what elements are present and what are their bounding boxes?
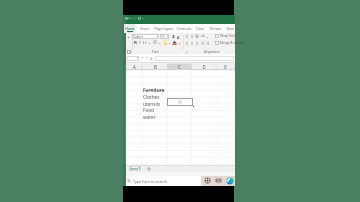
staticText: Type here to search	[133, 179, 167, 184]
button[interactable]: B	[150, 64, 160, 70]
staticText: Food	[143, 107, 154, 113]
button[interactable]: Clothes	[143, 93, 160, 100]
button[interactable]: Cortana	[204, 177, 211, 184]
button[interactable]: Orientation	[201, 34, 205, 38]
button[interactable]: Align	[190, 41, 194, 45]
staticText: Wrap Text	[220, 34, 235, 38]
button[interactable]: Cancel	[141, 56, 144, 59]
button[interactable]: Italic	[138, 40, 142, 44]
button[interactable]: Calibri	[132, 34, 159, 39]
button[interactable]: Task View	[215, 177, 222, 184]
staticText: C	[178, 64, 181, 70]
button[interactable]: Align	[195, 34, 199, 38]
button[interactable]: Formulas	[175, 24, 193, 33]
staticText: I	[139, 40, 141, 44]
button[interactable]: Insert	[137, 24, 152, 33]
button[interactable]: Increase font size	[171, 34, 175, 38]
staticText: A	[172, 34, 175, 38]
button[interactable]: Decrease indent	[201, 41, 205, 45]
button[interactable]: View	[224, 24, 235, 33]
button[interactable]: Merge & Center	[215, 41, 244, 45]
button[interactable]: Furniture	[143, 86, 165, 93]
button[interactable]: Align	[185, 41, 189, 45]
button[interactable]: water	[143, 113, 156, 120]
button[interactable]: E	[220, 64, 230, 70]
button[interactable]: Bold	[133, 40, 137, 44]
staticText: Formulas	[177, 26, 192, 30]
button[interactable]: Borders	[153, 40, 157, 44]
staticText: Home	[125, 26, 135, 30]
staticText: Merge & Center	[220, 41, 244, 45]
staticText: Font	[152, 50, 159, 54]
staticText: B	[154, 64, 157, 70]
staticText: U	[143, 40, 147, 44]
staticText: Review	[210, 26, 221, 30]
staticText: water	[143, 114, 156, 120]
button[interactable]: Align	[195, 41, 199, 45]
staticText: Clothes	[143, 94, 160, 100]
button[interactable]: Selected cell	[167, 98, 193, 106]
button[interactable]: Type here to search	[126, 176, 201, 186]
button[interactable]: 11	[160, 34, 169, 39]
staticText: Insert	[140, 26, 150, 30]
button[interactable]: Customize Quick Access Toolbar	[138, 17, 141, 20]
button[interactable]: Decrease font size	[176, 35, 180, 39]
button[interactable]: Font colour	[172, 40, 177, 45]
staticText: ab	[201, 34, 205, 38]
button[interactable]: Formula bar	[155, 56, 234, 61]
staticText: Sheet1	[129, 166, 141, 171]
staticText: fx	[150, 56, 153, 61]
button[interactable]: Save	[125, 17, 128, 20]
button[interactable]: C	[174, 64, 184, 70]
staticText: A	[133, 64, 136, 70]
button[interactable]: Sheet1	[129, 166, 141, 171]
button[interactable]: Align	[185, 34, 189, 38]
button[interactable]: Enter	[145, 56, 148, 59]
button[interactable]: Name box	[127, 56, 139, 61]
button[interactable]: New sheet	[147, 167, 151, 171]
staticText: B	[134, 40, 137, 44]
button[interactable]: Food	[143, 106, 154, 113]
staticText: Page Layout	[154, 26, 174, 30]
staticText: Data	[196, 26, 204, 30]
staticText: Furniture	[143, 87, 165, 93]
button[interactable]: Insert function	[150, 56, 153, 61]
button[interactable]: More	[168, 42, 171, 45]
button[interactable]: Redo	[134, 17, 137, 20]
button[interactable]: Wrap Text	[215, 34, 235, 38]
button[interactable]: Home	[124, 24, 135, 33]
button[interactable]: Page Layout	[152, 24, 175, 33]
staticText: A	[177, 35, 180, 39]
staticText: E	[224, 64, 227, 70]
button[interactable]: Increase indent	[206, 41, 210, 45]
button[interactable]: More	[206, 36, 209, 39]
button[interactable]: More	[158, 42, 161, 45]
staticText: Calibri	[133, 35, 143, 39]
button[interactable]: More	[148, 42, 151, 45]
staticText: Alignment	[204, 50, 220, 54]
button[interactable]: Fill colour	[163, 40, 168, 45]
button[interactable]: Undo	[128, 17, 131, 20]
button[interactable]: Data	[194, 24, 205, 33]
button[interactable]: More	[178, 42, 181, 45]
staticText: 11	[161, 35, 165, 39]
staticText: View	[226, 26, 234, 30]
button[interactable]: A	[129, 64, 139, 70]
button[interactable]: Microsoft Edge	[226, 177, 234, 185]
button[interactable]: Review	[208, 24, 223, 33]
staticText: utensils	[143, 101, 161, 107]
staticText: D	[202, 64, 206, 70]
button[interactable]: Align	[190, 34, 194, 38]
button[interactable]: Underline	[143, 40, 147, 44]
button[interactable]: utensils	[143, 100, 161, 107]
button[interactable]: D	[199, 64, 209, 70]
